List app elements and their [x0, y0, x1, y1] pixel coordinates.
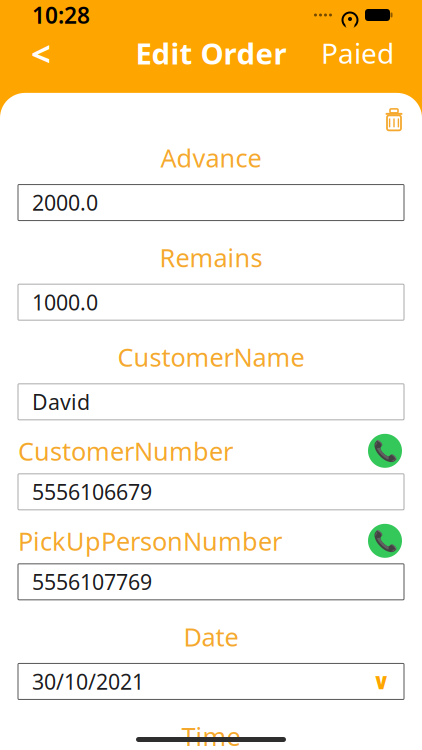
button[interactable]: Delete [374, 101, 414, 141]
staticText: 30/10/2021 [32, 667, 144, 696]
staticText: PickUpPersonNumber [18, 524, 282, 558]
staticText: Advance [160, 141, 261, 174]
staticText: David [32, 388, 90, 416]
staticText: 5556107769 [32, 568, 152, 596]
staticText: Remains [159, 240, 262, 274]
staticText: < [31, 30, 51, 76]
staticText: CustomerName [117, 340, 304, 374]
staticText: 10:28 [32, 0, 90, 30]
staticText: 2000.0 [32, 188, 98, 217]
staticText: 5556106679 [32, 478, 152, 506]
staticText: Date [183, 620, 238, 653]
button[interactable]: 30/10/2021 [18, 663, 404, 699]
button[interactable]: Paied [311, 31, 404, 75]
staticText: Paied [321, 34, 394, 72]
staticText: 1000.0 [32, 288, 98, 316]
staticText: 📞 [372, 529, 397, 552]
staticText: Edit Order [135, 33, 286, 72]
staticText: ∨ [372, 669, 390, 694]
staticText: Time [181, 719, 240, 750]
staticText: 📞 [372, 439, 397, 462]
button[interactable]: Back [18, 31, 64, 75]
button[interactable]: Call [366, 522, 404, 560]
button[interactable]: Call [366, 432, 404, 470]
staticText: CustomerNumber [18, 434, 233, 468]
